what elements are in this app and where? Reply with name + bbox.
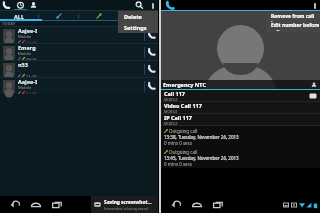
- button[interactable]: Video Call 117: [161, 102, 320, 113]
- staticText: Edit number before call: [271, 22, 320, 31]
- button[interactable]: Home: [29, 198, 43, 212]
- button[interactable]: Saving screenshot...: [91, 196, 158, 213]
- staticText: Aajee-I: [18, 27, 38, 34]
- button[interactable]: Back: [169, 198, 183, 212]
- staticText: 13:45, Tuesday, November 26, 2013: [164, 155, 239, 161]
- staticText: ALL: [14, 13, 24, 20]
- staticText: 09:16: [26, 57, 37, 60]
- button[interactable]: Delete: [118, 11, 159, 22]
- staticText: 02:48: [26, 91, 37, 94]
- button[interactable]: Call Aajee-I: [145, 27, 158, 43]
- button[interactable]: Aajee-I: [0, 78, 158, 94]
- staticText: Delete: [124, 13, 142, 20]
- button[interactable]: Settings: [118, 22, 159, 33]
- staticText: Emerg: [18, 44, 36, 51]
- staticText: Screenshot is being saved.: [104, 206, 149, 211]
- button[interactable]: Contacts: [27, 0, 40, 11]
- staticText: MOBILE: [164, 121, 178, 125]
- button[interactable]: Call n53: [145, 61, 158, 77]
- button[interactable]: Call: [163, 0, 177, 11]
- button[interactable]: Home: [190, 198, 204, 212]
- staticText: MOBILE: [164, 109, 178, 113]
- staticText: 11:16: [26, 74, 37, 77]
- staticText: n53: [18, 61, 28, 68]
- staticText: 0 mins 0 secs: [164, 140, 192, 146]
- staticText: Mobile: [18, 85, 32, 91]
- staticText: Emergency NTC: [163, 81, 206, 88]
- staticText: TODAY: [2, 21, 16, 26]
- button[interactable]: Call log: [14, 0, 27, 11]
- staticText: Video Call 117: [164, 102, 202, 109]
- button[interactable]: n53: [0, 61, 158, 77]
- button[interactable]: Recent apps: [211, 198, 225, 212]
- staticText: Outgoing call: [169, 149, 198, 155]
- button[interactable]: Incoming calls: [119, 11, 158, 21]
- staticText: 13:38, Tuesday, November 26, 2013: [164, 134, 239, 140]
- button[interactable]: ALL: [0, 11, 38, 21]
- staticText: -: [18, 68, 20, 74]
- button[interactable]: Back: [8, 198, 22, 212]
- button[interactable]: More options: [309, 0, 320, 11]
- button[interactable]: Call Emerg: [145, 44, 158, 60]
- staticText: Remove from call log: [271, 13, 320, 22]
- button[interactable]: Search: [133, 0, 146, 11]
- staticText: Outgoing call: [169, 128, 198, 134]
- staticText: MOBILE: [164, 97, 178, 101]
- button[interactable]: Edit number before call: [267, 22, 320, 31]
- button[interactable]: Recent apps: [50, 198, 64, 212]
- staticText: Aajee-I: [18, 78, 38, 85]
- button[interactable]: Call Aajee-I: [145, 78, 158, 94]
- button[interactable]: Remove from call log: [267, 13, 320, 22]
- button[interactable]: Send message: [307, 90, 318, 101]
- button[interactable]: Dial pad: [0, 0, 13, 11]
- button[interactable]: Emerg: [0, 44, 158, 60]
- staticText: Mobile: [18, 51, 32, 57]
- staticText: 0 mins 0 secs: [164, 161, 192, 167]
- button[interactable]: Outgoing calls: [79, 11, 118, 21]
- staticText: 13:48: [26, 40, 37, 43]
- staticText: Saving screenshot...: [104, 199, 152, 206]
- button[interactable]: Call 117: [161, 90, 320, 101]
- staticText: Call 117: [164, 90, 185, 97]
- button[interactable]: Aajee-I: [0, 27, 158, 43]
- button[interactable]: Emergency NTC: [161, 80, 320, 89]
- staticText: IP Call 117: [164, 114, 192, 121]
- button[interactable]: Missed calls: [39, 11, 78, 21]
- staticText: Mobile: [18, 34, 32, 40]
- button[interactable]: IP Call 117: [161, 114, 320, 125]
- staticText: Settings: [124, 24, 147, 31]
- button[interactable]: More options: [147, 0, 158, 11]
